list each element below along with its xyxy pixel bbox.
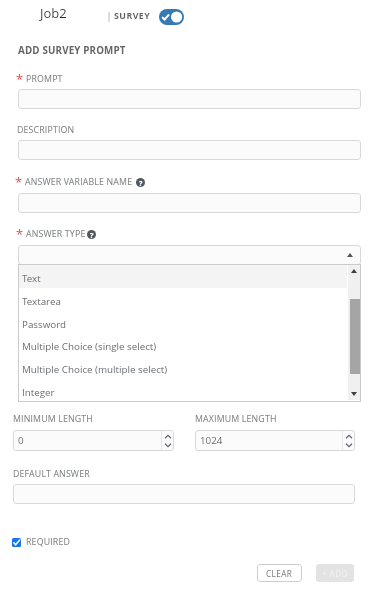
button[interactable]: Text input — [18, 140, 361, 160]
staticText: * — [15, 173, 23, 191]
staticText: DESCRIPTION — [17, 124, 75, 136]
staticText: Multiple Choice (multiple select) — [22, 363, 168, 376]
staticText: + ADD — [322, 568, 348, 579]
staticText: Text — [22, 272, 41, 285]
button[interactable]: Survey enabled toggle — [159, 9, 184, 25]
staticText: MINIMUM LENGTH — [13, 413, 94, 425]
staticText: ANSWER VARIABLE NAME — [25, 176, 133, 188]
button[interactable]: Number input — [195, 430, 355, 451]
button[interactable]: Answer type select — [18, 245, 361, 265]
button[interactable]: + ADD — [316, 564, 354, 582]
button[interactable]: CLEAR — [257, 564, 302, 582]
staticText: 1024 — [200, 434, 223, 447]
staticText: SURVEY — [114, 10, 151, 22]
staticText: Multiple Choice (single select) — [22, 340, 157, 353]
staticText: DEFAULT ANSWER — [13, 468, 90, 480]
button[interactable]: Integer — [18, 379, 347, 402]
staticText: MAXIMUM LENGTH — [195, 413, 277, 425]
staticText: 0 — [18, 434, 24, 447]
staticText: Textarea — [22, 295, 61, 308]
button[interactable]: Textarea — [18, 288, 347, 311]
staticText: * — [16, 225, 24, 243]
staticText: Job2 — [40, 4, 67, 22]
button[interactable]: Password — [18, 311, 347, 334]
staticText: REQUIRED — [26, 536, 70, 548]
staticText: Integer — [22, 386, 55, 399]
staticText: ANSWER TYPE — [26, 228, 86, 240]
button[interactable]: Multiple Choice (multiple select) — [18, 356, 347, 379]
staticText: PROMPT — [26, 73, 63, 85]
button[interactable]: Help — [87, 230, 96, 239]
button[interactable]: Text input — [18, 89, 361, 109]
staticText: ? — [90, 230, 94, 239]
button[interactable]: Text input — [13, 484, 355, 504]
staticText: * — [16, 70, 24, 88]
staticText: ADD SURVEY PROMPT — [18, 44, 126, 57]
staticText: CLEAR — [266, 568, 293, 579]
button[interactable]: Required checkbox — [12, 538, 21, 547]
button[interactable]: Text — [18, 265, 347, 288]
button[interactable]: Multiple Choice (single select) — [18, 333, 347, 356]
button[interactable]: Number input — [13, 430, 174, 451]
button[interactable]: Text input — [18, 193, 361, 213]
button[interactable]: Help — [136, 178, 145, 187]
staticText: Password — [22, 318, 67, 331]
staticText: ? — [139, 178, 143, 187]
